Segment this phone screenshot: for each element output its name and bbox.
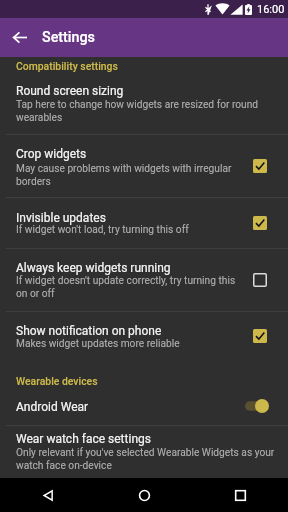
button[interactable]: Back xyxy=(0,478,96,512)
button[interactable]: Invisible updates xyxy=(0,198,288,248)
button[interactable]: Crop widgets xyxy=(0,135,288,197)
staticText: Always keep widgets running xyxy=(16,261,171,275)
button[interactable]: Show notification on phone xyxy=(0,312,288,366)
staticText: Show notification on phone xyxy=(16,324,162,338)
staticText: Wearable devices xyxy=(16,375,98,387)
staticText: Crop widgets xyxy=(16,147,87,161)
button[interactable]: Enabled xyxy=(243,206,277,240)
button[interactable]: Home xyxy=(96,478,192,512)
staticText: Tap here to change how widgets are resiz… xyxy=(16,99,260,123)
staticText: Round screen sizing xyxy=(16,84,124,98)
button[interactable]: Android Wear xyxy=(0,390,288,425)
staticText: Settings xyxy=(42,29,95,46)
staticText: Android Wear xyxy=(16,400,89,414)
button[interactable]: Enabled xyxy=(243,319,277,353)
button[interactable]: Android Wear toggle, on xyxy=(234,389,279,423)
staticText: If widget won't load, try turning this o… xyxy=(16,224,236,236)
button[interactable]: Always keep widgets running xyxy=(0,249,288,311)
button[interactable]: Round screen sizing xyxy=(0,57,288,134)
button[interactable]: Navigate up xyxy=(0,18,39,57)
button[interactable]: Enabled xyxy=(243,149,277,183)
button[interactable]: Wear watch face settings xyxy=(0,426,288,478)
button[interactable]: Recent apps xyxy=(192,478,288,512)
staticText: Makes widget updates more reliable xyxy=(16,338,236,350)
staticText: Only relevant if you've selected Wearabl… xyxy=(16,447,288,471)
button[interactable]: Disabled xyxy=(243,263,277,297)
staticText: 16:00 xyxy=(257,3,285,16)
staticText: Invisible updates xyxy=(16,211,106,225)
staticText: May cause problems with widgets with irr… xyxy=(16,163,236,187)
staticText: If widget doesn't update correctly, try … xyxy=(16,275,236,299)
staticText: Wear watch face settings xyxy=(16,432,151,446)
staticText: Compatibility settings xyxy=(16,60,118,72)
